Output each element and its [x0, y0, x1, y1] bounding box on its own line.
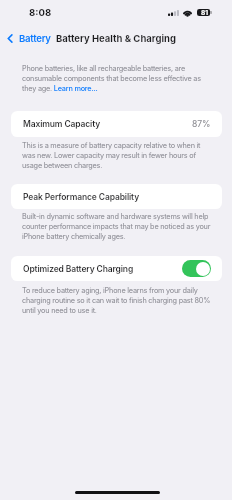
staticText: Optimized Battery Charging — [23, 264, 134, 274]
button[interactable]: Battery — [7, 32, 51, 45]
staticText: Peak Performance Capability — [23, 192, 140, 202]
button[interactable]: Optimized Battery Charging — [11, 256, 222, 281]
staticText: Built-in dynamic software and hardware s… — [22, 212, 213, 241]
button[interactable]: Maximum Capacity — [11, 111, 222, 137]
staticText: 8:08 — [29, 7, 52, 19]
staticText: To reduce battery aging, iPhone learns f… — [22, 286, 213, 315]
staticText: Battery — [19, 33, 51, 45]
button[interactable]: Peak Performance Capability — [11, 184, 222, 209]
staticText: Phone batteries, like all rechargeable b… — [22, 64, 213, 93]
staticText: This is a measure of battery capacity re… — [22, 141, 213, 170]
staticText: Maximum Capacity — [23, 119, 101, 129]
button[interactable]: Optimized Battery Charging toggle — [182, 260, 211, 277]
staticText: 87% — [192, 119, 211, 129]
staticText: 81 — [201, 9, 208, 16]
staticText: Battery Health & Charging — [56, 33, 176, 44]
